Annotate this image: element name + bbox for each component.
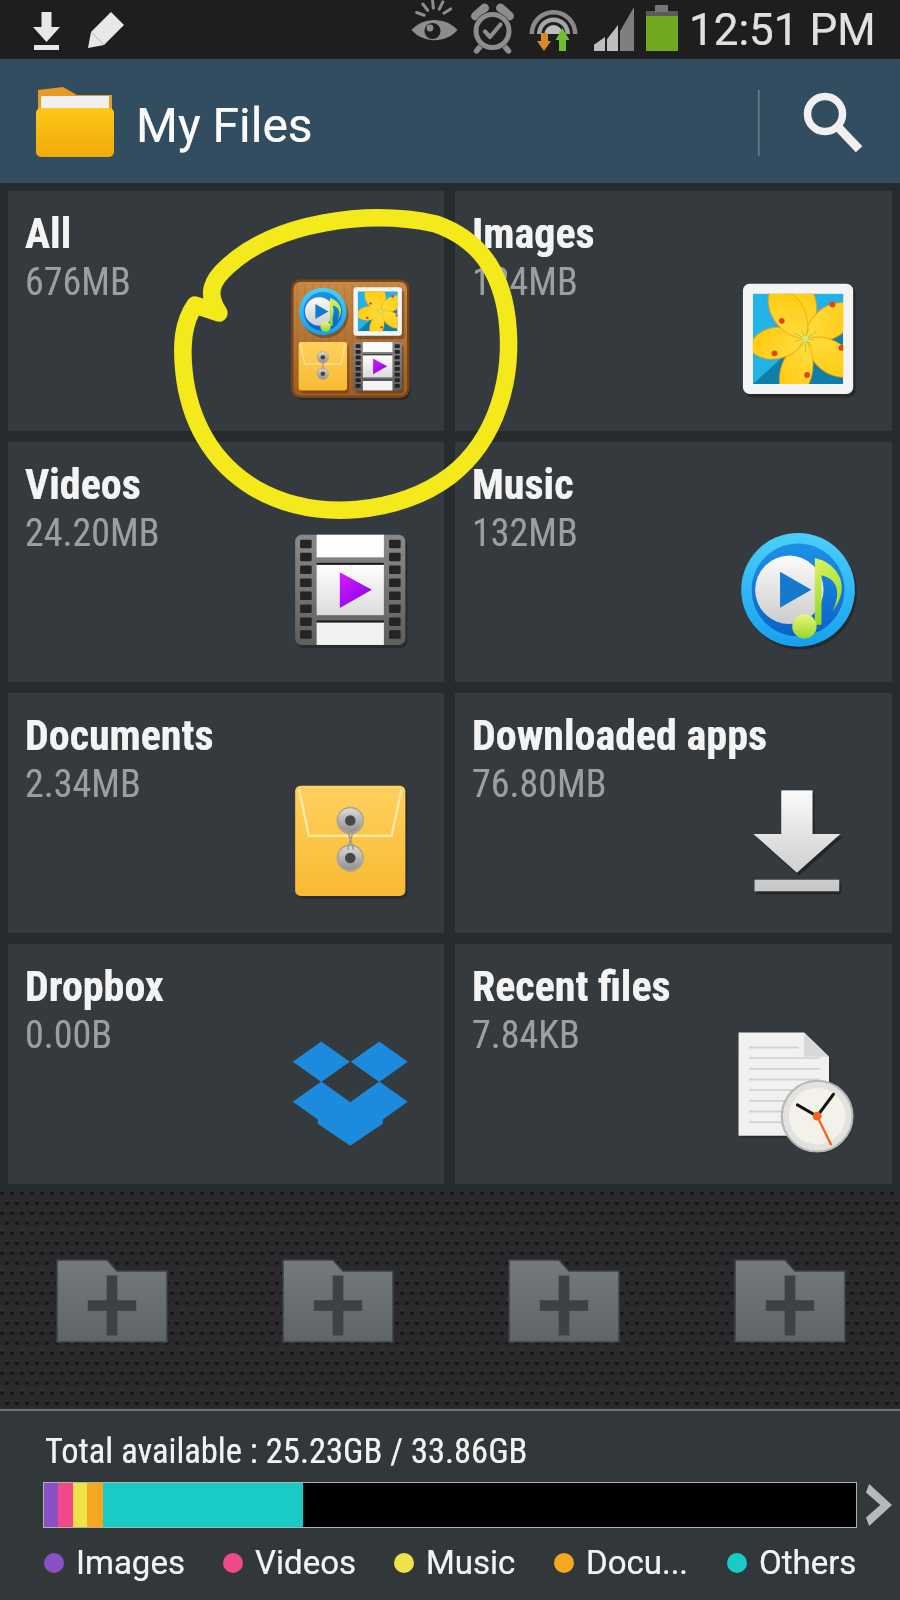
staticText: My Files [136,97,313,153]
button[interactable]: Music [394,1543,516,1582]
button[interactable]: Add shortcut folder [509,1260,619,1342]
staticText: Music [472,460,574,509]
button[interactable]: Storage usage breakdown [43,1482,857,1528]
staticText: Music [426,1543,516,1582]
staticText: Videos [255,1543,356,1582]
staticText: 676MB [25,260,131,305]
button[interactable]: Docu... [554,1543,689,1582]
button[interactable]: Add shortcut folder [57,1260,167,1342]
button[interactable]: My Files [0,59,400,183]
button[interactable]: Downloaded apps [455,693,892,933]
staticText: 2.34MB [25,762,141,807]
staticText: Recent files [472,962,671,1011]
button[interactable]: Search [758,59,900,183]
button[interactable]: Music [455,442,892,682]
staticText: 132MB [472,511,578,556]
staticText: Total available : 25.23GB / 33.86GB [45,1431,528,1471]
staticText: Others [759,1543,857,1582]
button[interactable]: Dropbox [8,944,444,1184]
staticText: 0.00B [25,1013,113,1058]
button[interactable]: Expand storage details [857,1475,900,1535]
button[interactable]: Add shortcut folder [283,1260,393,1342]
staticText: 124MB [472,260,578,305]
button[interactable]: Documents [8,693,444,933]
staticText: Videos [25,460,141,509]
button[interactable]: Images [455,191,892,431]
staticText: Documents [25,711,214,760]
staticText: 24.20MB [25,511,160,556]
staticText: 7.84KB [472,1013,580,1058]
staticText: All [25,209,72,258]
staticText: Images [472,209,595,258]
staticText: 76.80MB [472,762,607,807]
button[interactable]: Images [44,1543,185,1582]
button[interactable]: Others [727,1543,857,1582]
button[interactable]: Add shortcut folder [735,1260,845,1342]
button[interactable]: Videos [223,1543,356,1582]
staticText: Docu... [586,1543,689,1582]
button[interactable]: All [8,191,444,431]
staticText: Images [76,1543,185,1582]
staticText: 12:51 PM [689,4,876,56]
staticText: Dropbox [25,962,164,1011]
button[interactable]: Recent files [455,944,892,1184]
staticText: Downloaded apps [472,711,768,760]
button[interactable]: Videos [8,442,444,682]
